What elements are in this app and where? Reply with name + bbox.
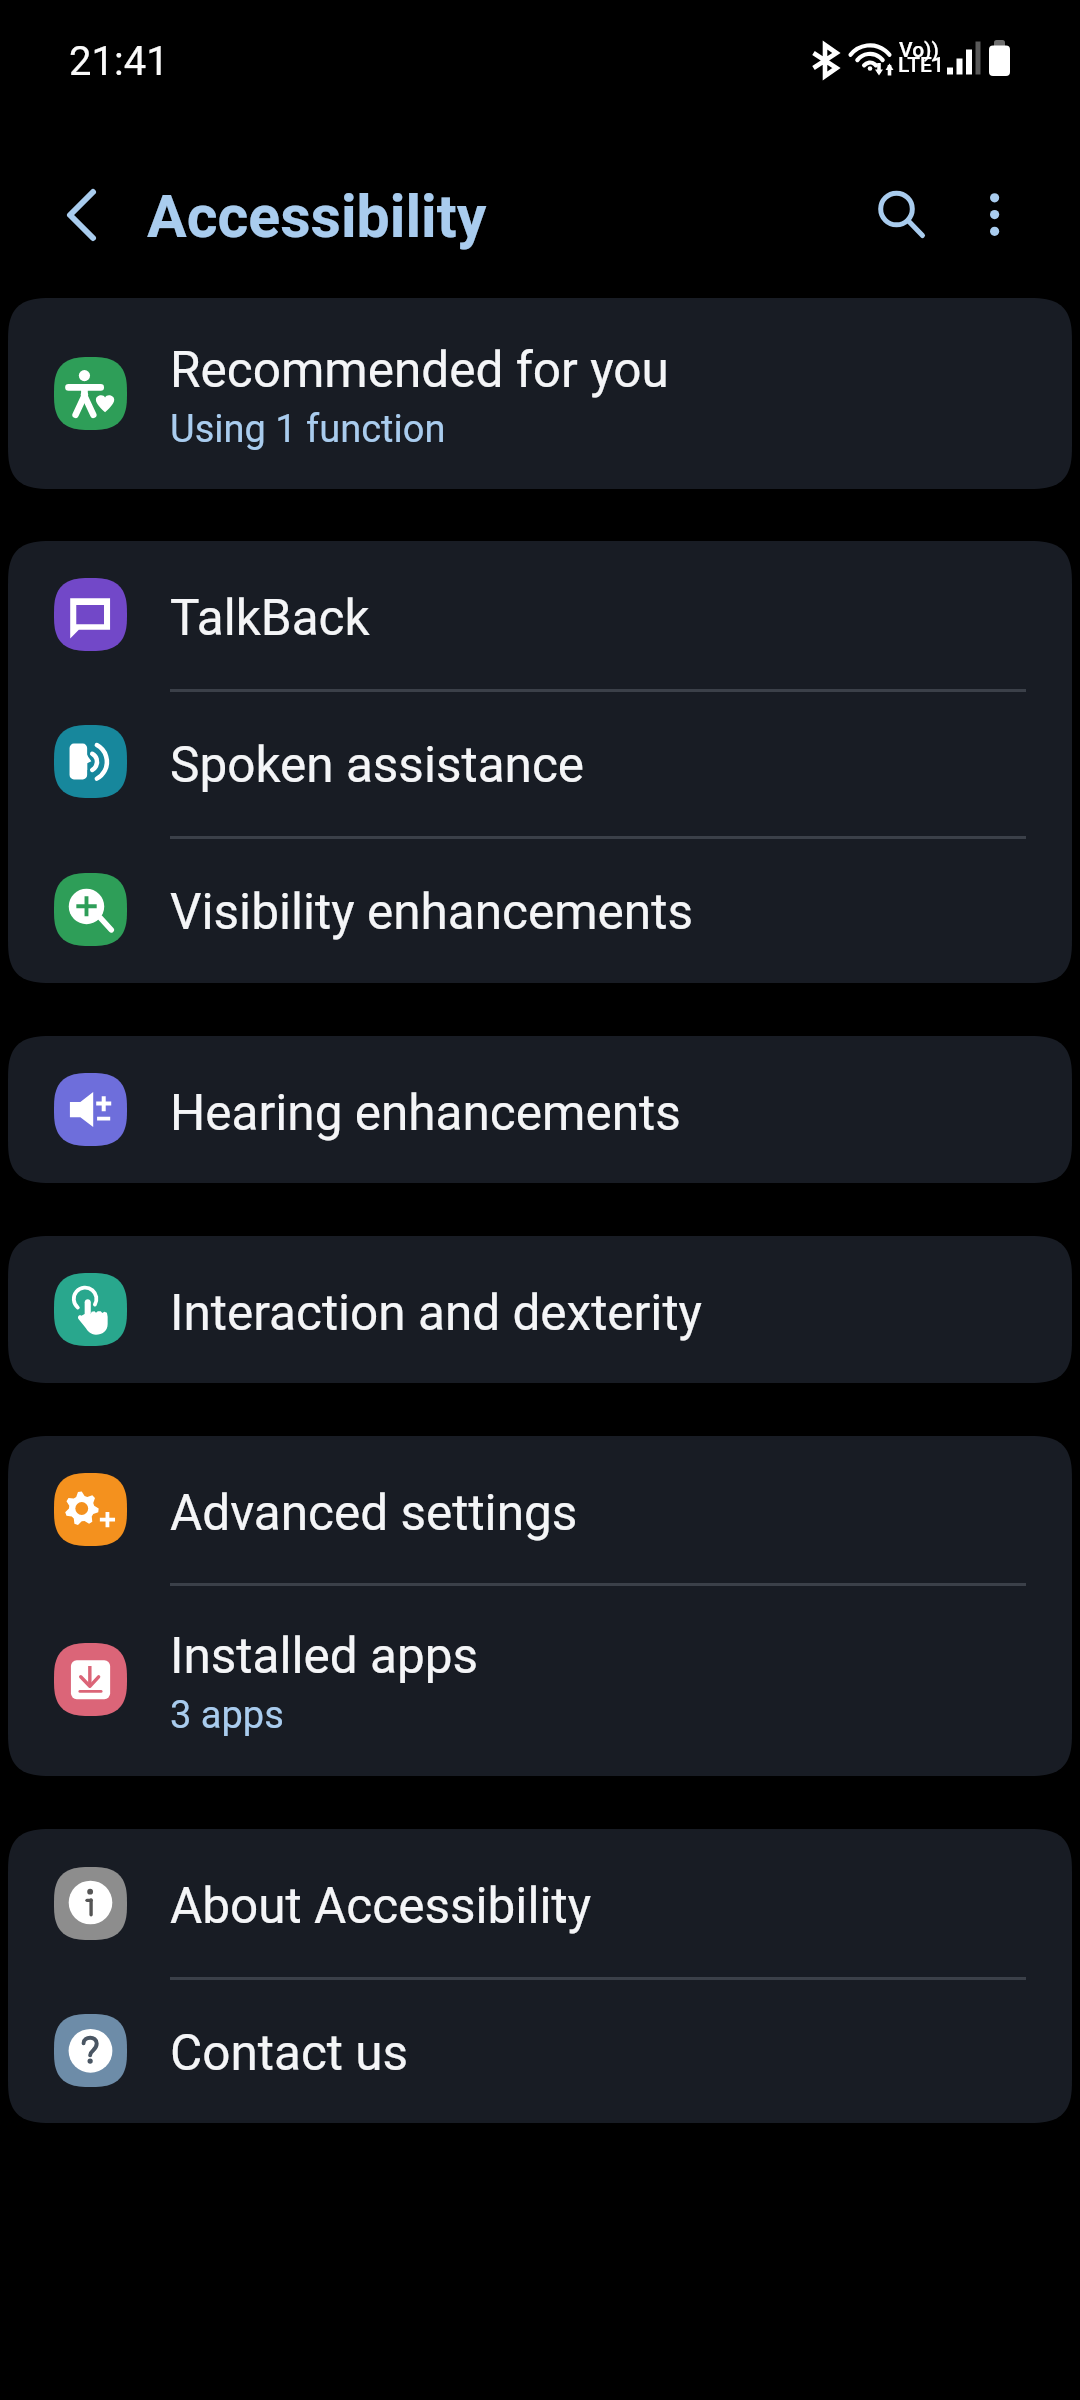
staticText: Hearing enhancements [170, 1084, 681, 1142]
button[interactable]: Navigate up [26, 160, 136, 270]
button[interactable]: Hearing enhancements [8, 1036, 1072, 1183]
staticText: Advanced settings [170, 1484, 578, 1542]
button[interactable]: Installed apps [8, 1583, 1072, 1776]
staticText: Installed apps [170, 1627, 479, 1685]
button[interactable]: TalkBack [8, 541, 1072, 688]
button[interactable]: Visibility enhancements [8, 835, 1072, 983]
button[interactable]: Advanced settings [8, 1436, 1072, 1583]
staticText: Contact us [170, 2024, 409, 2082]
staticText: Using 1 function [170, 407, 446, 452]
staticText: TalkBack [170, 589, 370, 647]
button[interactable]: Recommended for you [8, 298, 1072, 489]
staticText: Vo)) [899, 38, 939, 63]
button[interactable]: Interaction and dexterity [8, 1236, 1072, 1383]
staticText: Recommended for you [170, 341, 669, 399]
staticText: 21:41 [69, 38, 169, 85]
staticText: Accessibility [147, 182, 487, 251]
button[interactable]: Spoken assistance [8, 688, 1072, 835]
button[interactable]: Contact us [8, 1977, 1072, 2123]
staticText: LTE1 [898, 53, 944, 78]
staticText: Spoken assistance [170, 736, 585, 794]
button[interactable]: Search [841, 157, 951, 267]
staticText: Visibility enhancements [170, 883, 693, 941]
staticText: About Accessibility [170, 1877, 592, 1935]
button[interactable]: About Accessibility [8, 1829, 1072, 1977]
staticText: 3 apps [170, 1693, 284, 1738]
staticText: Interaction and dexterity [170, 1284, 703, 1342]
button[interactable]: More options [940, 159, 1050, 269]
